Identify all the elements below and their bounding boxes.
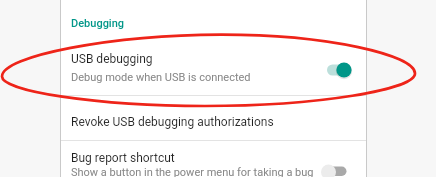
staticText: Revoke USB debugging authorizations bbox=[71, 115, 274, 129]
staticText: Debugging bbox=[71, 17, 125, 30]
button[interactable]: USB debugging bbox=[61, 40, 366, 95]
staticText: Show a button in the power menu for taki… bbox=[71, 166, 314, 177]
button[interactable]: Bug report shortcut bbox=[61, 141, 366, 177]
staticText: USB debugging bbox=[71, 52, 153, 66]
staticText: Debug mode when USB is connected bbox=[71, 71, 251, 84]
staticText: Bug report shortcut bbox=[71, 151, 175, 165]
button[interactable]: Revoke USB debugging authorizations bbox=[61, 96, 366, 140]
